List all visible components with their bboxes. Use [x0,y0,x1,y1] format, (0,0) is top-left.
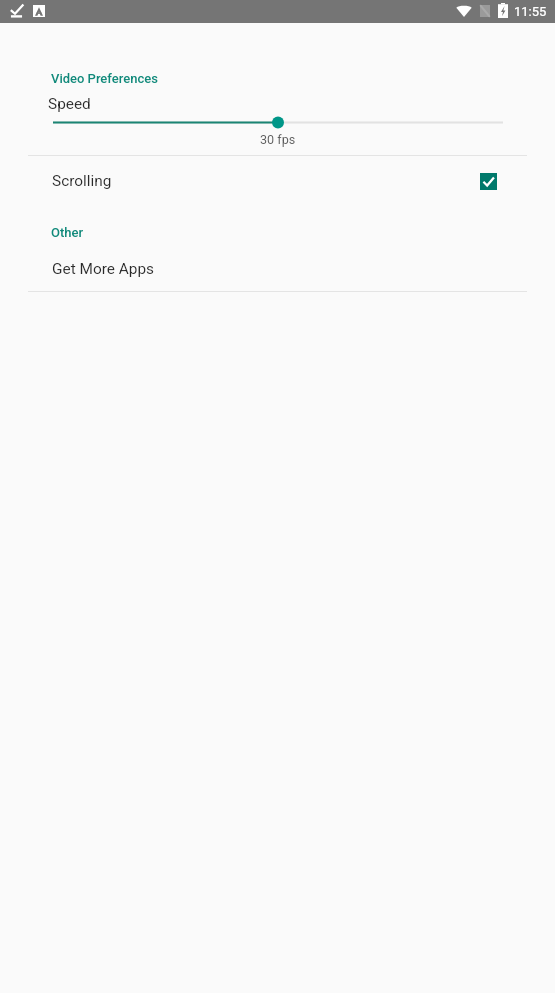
other: Wi-Fi connected [456,5,472,17]
staticText: 11:55 [514,4,547,19]
other: No SIM card [480,5,490,17]
staticText: Speed [48,95,91,113]
button[interactable]: Scrolling [0,156,555,206]
other: App notification [33,5,45,17]
other: Battery charging [498,3,508,18]
other: Download complete [9,4,24,18]
staticText: Other [51,225,84,240]
staticText: Get More Apps [52,260,155,278]
button[interactable]: Speed [0,95,555,147]
staticText: 30 fps [260,132,296,147]
button[interactable]: Get More Apps [0,246,555,291]
button[interactable]: Speed, 30 fps [0,113,555,129]
staticText: Scrolling [52,172,112,190]
button[interactable]: Scrolling, checked [471,164,505,198]
staticText: Video Preferences [51,71,158,86]
